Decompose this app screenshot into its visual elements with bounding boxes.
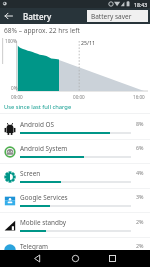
button[interactable]: Home [67, 250, 84, 267]
staticText: 0% [11, 85, 18, 91]
staticText: 00:00 [73, 94, 85, 100]
staticText: 100% [5, 38, 17, 44]
staticText: 6% [136, 144, 144, 151]
staticText: 68% – approx. 22 hrs left [4, 26, 80, 35]
staticText: 3% [136, 193, 144, 200]
staticText: Battery saver [91, 12, 132, 21]
button[interactable]: Android OS [0, 115, 150, 140]
staticText: Android System [20, 144, 68, 153]
staticText: 2% [136, 218, 144, 225]
staticText: 18:43 [134, 1, 148, 8]
staticText: 25/11 [81, 39, 95, 46]
button[interactable]: Use since last full charge [0, 101, 150, 113]
staticText: Battery [23, 11, 52, 22]
button[interactable]: Android System [0, 139, 150, 164]
staticText: 09:00 [11, 94, 23, 100]
button[interactable]: Back [29, 250, 46, 267]
button[interactable]: Screen [0, 164, 150, 189]
staticText: 16:00 [133, 94, 145, 100]
button[interactable]: Recent apps [104, 250, 121, 267]
button[interactable]: Navigate up [0, 8, 17, 24]
staticText: 4% [136, 169, 144, 176]
staticText: Android OS [20, 120, 55, 129]
button[interactable]: Google Services [0, 188, 150, 213]
button[interactable]: Battery saver [87, 10, 148, 22]
button[interactable]: Mobile standby [0, 213, 150, 238]
staticText: Google Services [20, 193, 68, 202]
staticText: Use since last full charge [4, 103, 72, 111]
button[interactable]: Telegram [0, 237, 150, 262]
staticText: Telegram [20, 242, 48, 251]
staticText: Screen [20, 169, 41, 178]
staticText: 2% [136, 242, 144, 249]
staticText: Mobile standby [20, 218, 67, 227]
staticText: 8% [136, 120, 144, 127]
